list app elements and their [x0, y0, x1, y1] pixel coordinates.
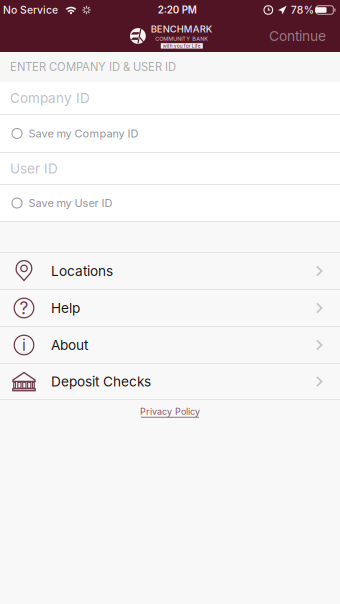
staticText: Save my Company ID	[29, 127, 139, 140]
button[interactable]: Deposit Checks	[0, 364, 340, 399]
staticText: ?	[19, 297, 28, 318]
staticText: ENTER COMPANY ID & USER ID	[10, 60, 176, 74]
staticText: Deposit Checks	[51, 373, 151, 390]
staticText: i	[22, 335, 26, 355]
staticText: Company ID	[10, 90, 90, 106]
staticText: User ID	[10, 160, 58, 177]
button[interactable]: Save my User ID	[0, 185, 340, 221]
button[interactable]: ?	[0, 290, 340, 326]
button[interactable]: Locations	[0, 253, 340, 289]
staticText: 2:20 PM	[158, 4, 197, 16]
staticText: Save my User ID	[29, 196, 113, 210]
staticText: COMMUNITY BANK	[155, 35, 208, 42]
staticText: BENCHMARK	[151, 23, 213, 35]
staticText: Privacy Policy	[140, 406, 200, 417]
staticText: with you for Life	[163, 43, 201, 49]
button[interactable]: Save my Company ID	[0, 115, 340, 152]
button[interactable]: Privacy Policy	[140, 400, 200, 418]
staticText: Continue	[269, 28, 326, 44]
staticText: About	[51, 337, 88, 353]
staticText: Locations	[51, 263, 113, 279]
staticText: 78%	[291, 4, 314, 16]
staticText: Help	[51, 300, 80, 316]
button[interactable]: i	[0, 327, 340, 363]
button[interactable]: Continue	[261, 20, 340, 52]
staticText: No Service	[3, 4, 58, 16]
